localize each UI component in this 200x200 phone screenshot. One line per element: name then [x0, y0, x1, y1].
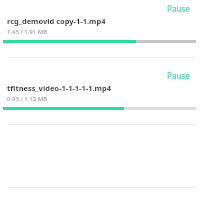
button[interactable]: Pause download — [157, 68, 200, 83]
staticText: rcg_demovid copy-1-1.mp4 — [7, 16, 106, 26]
staticText: Pause — [167, 3, 190, 14]
staticText: 1.45 / 1.91 MB — [7, 28, 48, 36]
staticText: Pause — [167, 70, 190, 81]
button[interactable]: Pause download — [0, 68, 200, 110]
staticText: tfitness_video-1-1-1-1-1.mp4 — [7, 83, 111, 93]
staticText: 0.93 / 1.12 MB — [7, 95, 48, 103]
button[interactable]: Pause download — [157, 1, 200, 16]
button[interactable]: Pause download — [0, 1, 200, 43]
